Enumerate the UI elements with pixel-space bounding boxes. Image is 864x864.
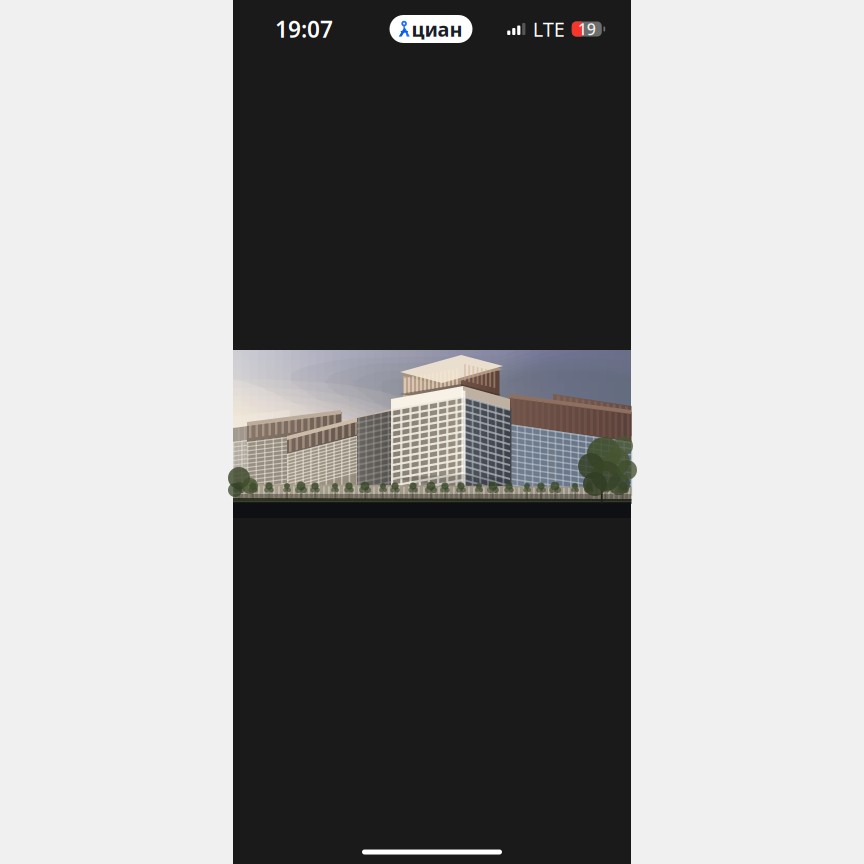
button[interactable]: Home [362, 849, 502, 854]
staticText: LTE [533, 16, 565, 42]
staticText: циан [411, 16, 462, 42]
staticText: 19:07 [275, 14, 333, 44]
staticText: 19 [578, 18, 596, 40]
button[interactable]: циан [389, 15, 472, 43]
